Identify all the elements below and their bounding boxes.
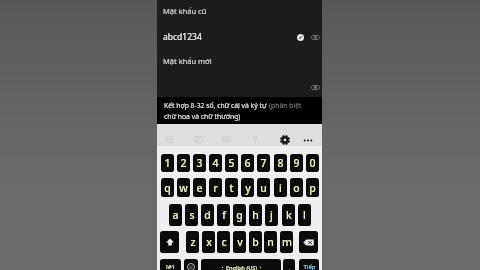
- staticText: f: [222, 208, 226, 222]
- staticText: t: [229, 181, 234, 195]
- staticText: 3: [196, 156, 203, 170]
- button[interactable]: 7: [257, 154, 270, 172]
- staticText: e: [196, 181, 203, 195]
- staticText: d: [204, 208, 211, 222]
- button[interactable]: 4: [209, 154, 222, 172]
- staticText: c: [221, 235, 227, 249]
- button[interactable]: m: [280, 231, 293, 253]
- staticText: 0: [309, 156, 316, 170]
- staticText: u: [260, 181, 267, 195]
- button[interactable]: [160, 231, 179, 253]
- staticText: w: [179, 181, 188, 195]
- staticText: 2: [180, 156, 187, 170]
- button[interactable]: English (US): [201, 259, 281, 270]
- button[interactable]: l: [298, 204, 311, 226]
- button[interactable]: Keyboard tool 2: [191, 132, 206, 147]
- button[interactable]: o: [290, 178, 303, 197]
- staticText: x: [206, 235, 212, 249]
- button[interactable]: g: [233, 204, 246, 226]
- staticText: q: [164, 181, 171, 195]
- button[interactable]: v: [233, 231, 246, 253]
- button[interactable]: h: [249, 204, 262, 226]
- staticText: (phân biệt: [269, 101, 302, 110]
- button[interactable]: .: [283, 259, 295, 270]
- button[interactable]: s: [185, 204, 198, 226]
- button[interactable]: Show password: [308, 30, 322, 44]
- staticText: m: [282, 235, 292, 249]
- button[interactable]: !#1: [160, 259, 181, 270]
- staticText: 4: [212, 156, 219, 170]
- staticText: 8: [277, 156, 284, 170]
- button[interactable]: r: [209, 178, 222, 197]
- button[interactable]: p: [306, 178, 319, 197]
- staticText: p: [309, 181, 316, 195]
- button[interactable]: k: [282, 204, 295, 226]
- staticText: 7: [260, 156, 267, 170]
- button[interactable]: 8: [274, 154, 287, 172]
- staticText: b: [252, 235, 259, 249]
- staticText: chữ hoa và chữ thường): [164, 112, 241, 121]
- button[interactable]: c: [217, 231, 230, 253]
- staticText: 1: [164, 156, 171, 170]
- staticText: abcd1234: [163, 31, 202, 43]
- staticText: Kết hợp 8-32 số, chữ cái và ký tự: [164, 101, 269, 110]
- staticText: y: [245, 181, 251, 195]
- button[interactable]: u: [257, 178, 270, 197]
- button[interactable]: More options: [300, 132, 315, 147]
- staticText: 5: [228, 156, 235, 170]
- button[interactable]: z: [186, 231, 199, 253]
- button[interactable]: j: [265, 204, 278, 226]
- button[interactable]: Tiếp: [299, 259, 319, 270]
- staticText: g: [236, 208, 243, 222]
- staticText: !#1: [166, 263, 175, 270]
- button[interactable]: e: [193, 178, 206, 197]
- staticText: n: [267, 235, 274, 249]
- staticText: s: [189, 208, 195, 222]
- staticText: i: [279, 181, 282, 195]
- button[interactable]: Keyboard tool 4: [248, 132, 263, 147]
- staticText: English (US): [226, 264, 257, 270]
- button[interactable]: i: [274, 178, 287, 197]
- button[interactable]: 3: [193, 154, 206, 172]
- button[interactable]: 0: [306, 154, 319, 172]
- button[interactable]: y: [241, 178, 254, 197]
- staticText: o: [293, 181, 300, 195]
- button[interactable]: w: [177, 178, 190, 197]
- button[interactable]: q: [161, 178, 174, 197]
- staticText: l: [303, 208, 306, 222]
- button[interactable]: 9: [290, 154, 303, 172]
- button[interactable]: 5: [225, 154, 238, 172]
- button[interactable]: Show new password: [308, 80, 322, 94]
- button[interactable]: [299, 231, 318, 253]
- button[interactable]: a: [169, 204, 182, 226]
- button[interactable]: [184, 259, 198, 270]
- staticText: z: [190, 235, 196, 249]
- staticText: Mật khẩu mới: [163, 56, 212, 66]
- staticText: Mật khẩu cũ: [163, 6, 207, 16]
- button[interactable]: Keyboard settings: [277, 132, 292, 147]
- button[interactable]: Keyboard tool 1: [162, 132, 177, 147]
- staticText: a: [172, 208, 179, 222]
- button[interactable]: 1: [161, 154, 174, 172]
- staticText: h: [252, 208, 259, 222]
- staticText: v: [237, 235, 243, 249]
- button[interactable]: Keyboard tool 3: [219, 132, 234, 147]
- button[interactable]: 6: [241, 154, 254, 172]
- staticText: 9: [293, 156, 300, 170]
- button[interactable]: n: [264, 231, 277, 253]
- button[interactable]: b: [249, 231, 262, 253]
- staticText: 6: [244, 156, 251, 170]
- button[interactable]: f: [217, 204, 230, 226]
- staticText: .: [288, 262, 291, 270]
- button[interactable]: 2: [177, 154, 190, 172]
- staticText: j: [270, 208, 273, 222]
- staticText: r: [213, 181, 218, 195]
- staticText: Tiếp: [303, 263, 316, 270]
- button[interactable]: t: [225, 178, 238, 197]
- button[interactable]: Clear text: [293, 30, 307, 44]
- button[interactable]: x: [202, 231, 215, 253]
- button[interactable]: d: [201, 204, 214, 226]
- staticText: k: [286, 208, 292, 222]
